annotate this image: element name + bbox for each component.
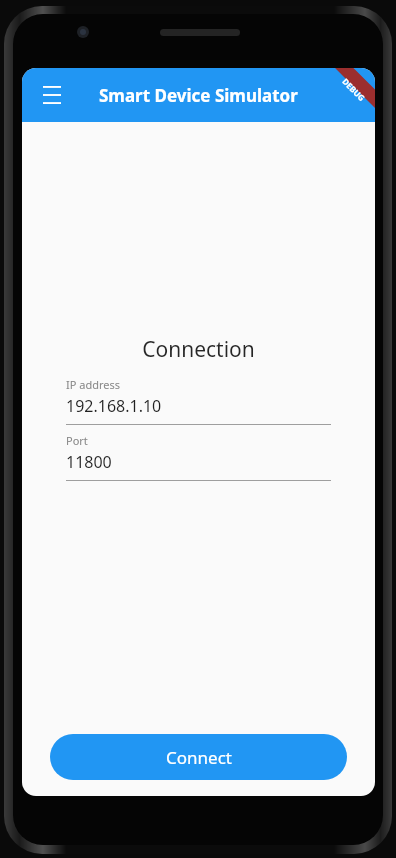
button[interactable]: Port — [66, 433, 331, 481]
staticText: Smart Device Simulator — [99, 84, 298, 107]
staticText: IP address — [66, 377, 121, 392]
staticText: Connect — [166, 746, 232, 769]
staticText: DEBUG — [340, 76, 368, 103]
staticText: 11800 — [66, 451, 112, 473]
staticText: 192.168.1.10 — [66, 395, 162, 417]
staticText: Connection — [66, 335, 331, 364]
staticText: Port — [66, 433, 88, 448]
button[interactable]: IP address — [66, 377, 331, 425]
button[interactable]: Open navigation menu — [32, 75, 72, 115]
button[interactable]: Connect — [50, 734, 347, 780]
